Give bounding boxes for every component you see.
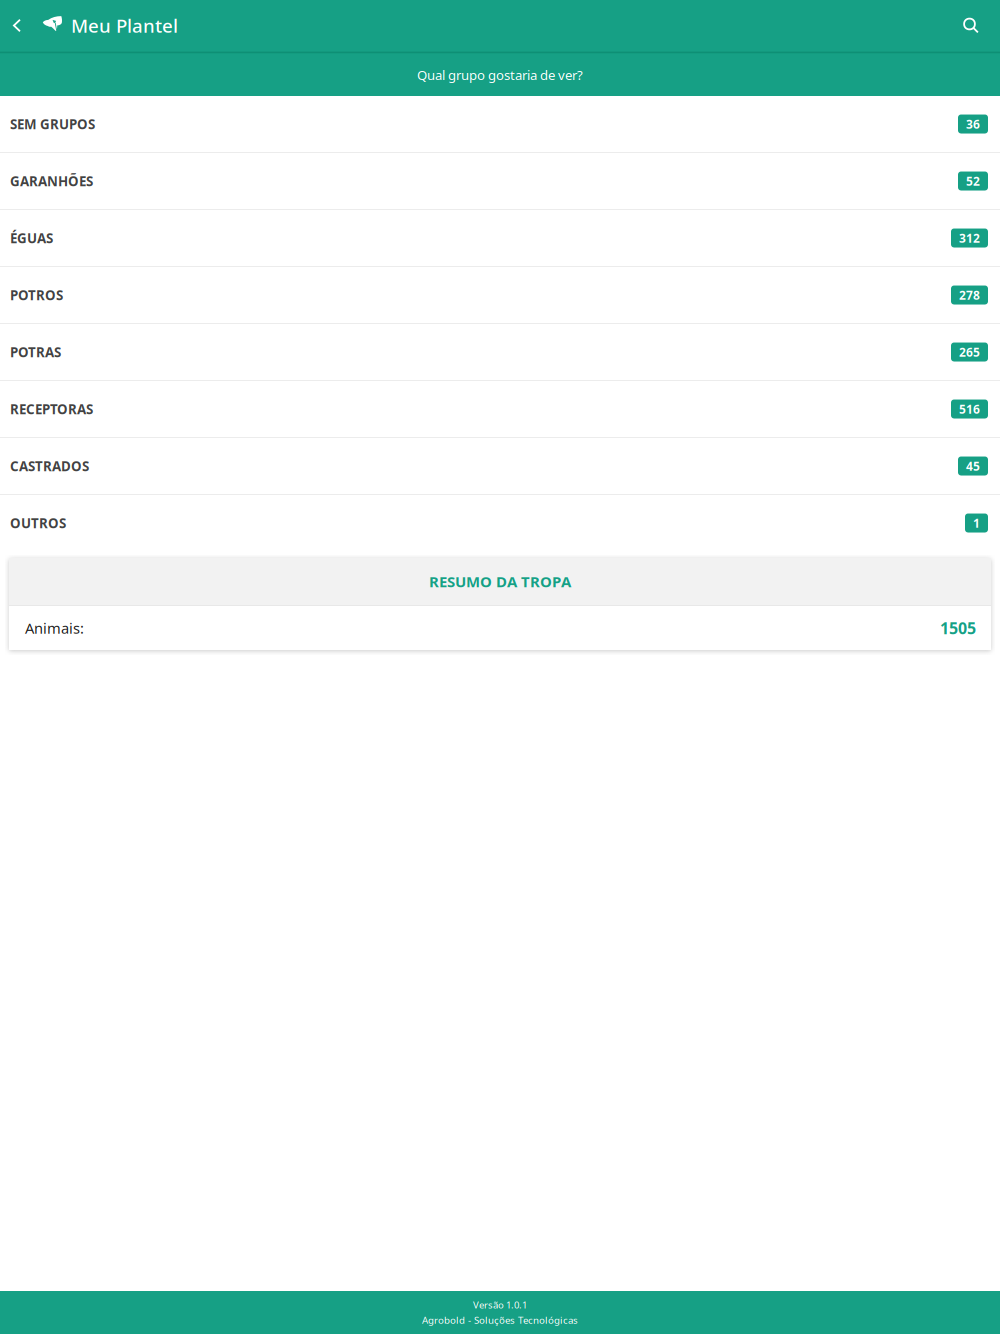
staticText: 36 — [966, 116, 980, 132]
staticText: CASTRADOS — [10, 457, 89, 475]
staticText: POTRAS — [10, 343, 61, 361]
button[interactable]: ÉGUAS — [0, 210, 1000, 266]
staticText: Agrobold - Soluções Tecnológicas — [422, 1313, 578, 1327]
staticText: 516 — [959, 401, 980, 417]
staticText: OUTROS — [10, 514, 66, 532]
staticText: RECEPTORAS — [10, 400, 93, 418]
staticText: 1505 — [940, 617, 976, 639]
button[interactable]: GARANHÕES — [0, 153, 1000, 209]
staticText: Meu Plantel — [71, 13, 178, 38]
button[interactable]: SEM GRUPOS — [0, 96, 1000, 152]
button[interactable]: POTROS — [0, 267, 1000, 323]
button[interactable]: OUTROS — [0, 495, 1000, 551]
staticText: 45 — [966, 458, 980, 474]
staticText: 265 — [959, 344, 980, 360]
staticText: 1 — [973, 515, 980, 531]
button[interactable]: Back — [4, 0, 30, 51]
staticText: 52 — [966, 173, 980, 189]
staticText: SEM GRUPOS — [10, 115, 95, 133]
staticText: POTROS — [10, 286, 63, 304]
button[interactable]: Search — [954, 0, 988, 51]
staticText: RESUMO DA TROPA — [429, 571, 571, 592]
staticText: Qual grupo gostaria de ver? — [417, 66, 583, 84]
button[interactable]: CASTRADOS — [0, 438, 1000, 494]
staticText: ÉGUAS — [10, 229, 53, 247]
staticText: 312 — [959, 230, 980, 246]
button[interactable]: POTRAS — [0, 324, 1000, 380]
staticText: 278 — [959, 287, 980, 303]
staticText: Animais: — [25, 618, 84, 638]
staticText: Versão 1.0.1 — [473, 1298, 527, 1311]
button[interactable]: RECEPTORAS — [0, 381, 1000, 437]
staticText: GARANHÕES — [10, 172, 93, 190]
